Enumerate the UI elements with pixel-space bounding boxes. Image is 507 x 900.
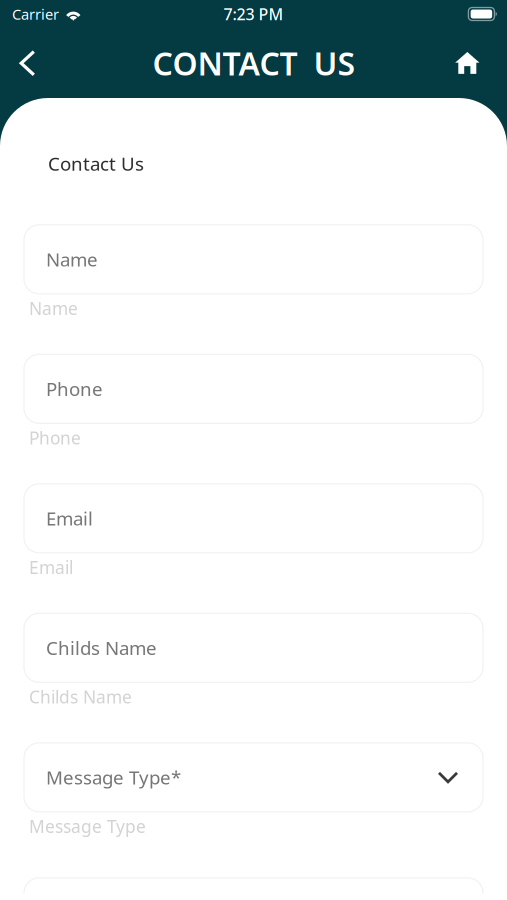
button[interactable]: Name [24, 225, 483, 294]
staticText: Name [46, 247, 98, 272]
staticText: CONTACT US [152, 42, 355, 84]
button[interactable]: Childs Name [24, 613, 483, 682]
staticText: Childs Name [46, 635, 157, 660]
button[interactable]: Message Type* [24, 743, 483, 812]
staticText: Contact Us [48, 151, 144, 176]
staticText: Phone [29, 426, 81, 449]
staticText: Email [29, 556, 73, 579]
staticText: Name [29, 297, 78, 320]
button[interactable]: Phone [24, 354, 483, 423]
button[interactable]: Home [440, 39, 495, 87]
staticText: Phone [46, 376, 103, 401]
staticText: Email [46, 506, 93, 531]
staticText: Carrier [12, 4, 59, 24]
staticText: Message Type [29, 815, 146, 838]
staticText: Message Type* [46, 765, 181, 790]
staticText: Childs Name [29, 685, 132, 708]
button[interactable]: Email [24, 484, 483, 553]
staticText: 7:23 PM [223, 3, 283, 25]
button[interactable]: Back [0, 39, 55, 87]
